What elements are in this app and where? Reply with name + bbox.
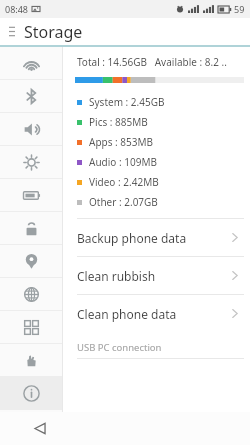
button[interactable]: Sound xyxy=(0,113,62,146)
button[interactable]: Menu xyxy=(0,18,24,45)
button[interactable]: Apps xyxy=(0,311,62,344)
button[interactable]: Clean rubbish xyxy=(63,257,250,294)
staticText: System : 2.45GB xyxy=(89,95,165,109)
button[interactable]: Location xyxy=(0,245,62,278)
staticText: Backup phone data xyxy=(77,230,187,246)
button[interactable]: Network xyxy=(0,278,62,311)
staticText: Storage xyxy=(24,21,83,43)
button[interactable]: Backup phone data xyxy=(63,219,250,256)
button[interactable]: Back xyxy=(0,412,80,445)
staticText: Other : 2.07GB xyxy=(89,195,158,209)
button[interactable]: Info xyxy=(0,377,62,410)
staticText: Clean phone data xyxy=(77,306,177,322)
button[interactable]: Wi-Fi xyxy=(0,47,62,80)
staticText: 59 xyxy=(234,3,245,15)
staticText: Clean rubbish xyxy=(77,268,156,284)
button[interactable]: Lock xyxy=(0,212,62,245)
staticText: Apps : 853MB xyxy=(89,135,154,149)
staticText: 08:48 xyxy=(5,3,29,15)
staticText: USB PC connection xyxy=(77,341,162,354)
button[interactable]: Battery xyxy=(0,179,62,212)
button[interactable]: Bluetooth xyxy=(0,80,62,113)
staticText: Audio : 109MB xyxy=(89,155,157,169)
staticText: Video : 2.42MB xyxy=(89,175,159,189)
staticText: Pics : 885MB xyxy=(89,115,148,129)
staticText: Total : 14.56GB Available : 8.2 .. xyxy=(77,55,227,69)
button[interactable]: Gestures xyxy=(0,344,62,377)
button[interactable]: Brightness xyxy=(0,146,62,179)
button[interactable]: Clean phone data xyxy=(63,295,250,332)
